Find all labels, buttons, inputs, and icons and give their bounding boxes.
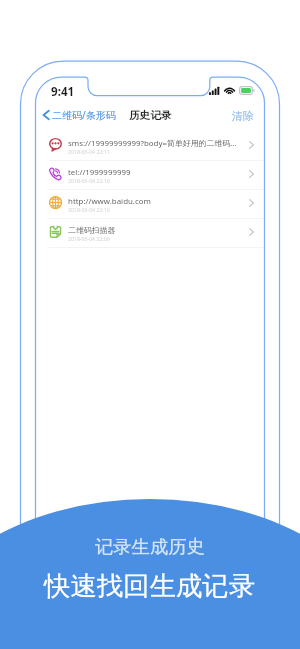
other: Wi-Fi [224,86,235,95]
staticText: sms://19999999999?body=简单好用的二维码... [68,138,237,149]
staticText: 二维码/条形码 [52,108,116,122]
staticText: 历史记录 [129,109,172,122]
staticText: 二维码扫描器 [68,225,116,235]
staticText: 2018-05-04 22:10 [68,206,110,213]
button[interactable]: http://www.baidu.com [0,190,300,219]
staticText: tel://1999999999 [68,167,131,178]
staticText: 快速找回生成记录 [44,570,256,603]
staticText: http://www.baidu.com [68,196,151,207]
staticText: 2018-05-04 22:11 [68,148,110,155]
button[interactable]: 二维码扫描器 [0,219,300,248]
staticText: 2018-05-04 22:09 [68,235,110,242]
button[interactable]: tel://1999999999 [0,161,300,190]
other: Battery [239,86,255,95]
button[interactable]: sms://19999999999?body=简单好用的二维码... [0,132,300,161]
button[interactable]: 清除 [232,109,254,123]
staticText: 记录生成历史 [95,535,205,558]
button[interactable]: 二维码/条形码 [42,108,116,122]
staticText: 清除 [232,109,254,123]
staticText: 2018-05-04 22:10 [68,177,110,184]
other: Cellular signal [209,86,220,95]
staticText: 9:41 [51,84,75,100]
